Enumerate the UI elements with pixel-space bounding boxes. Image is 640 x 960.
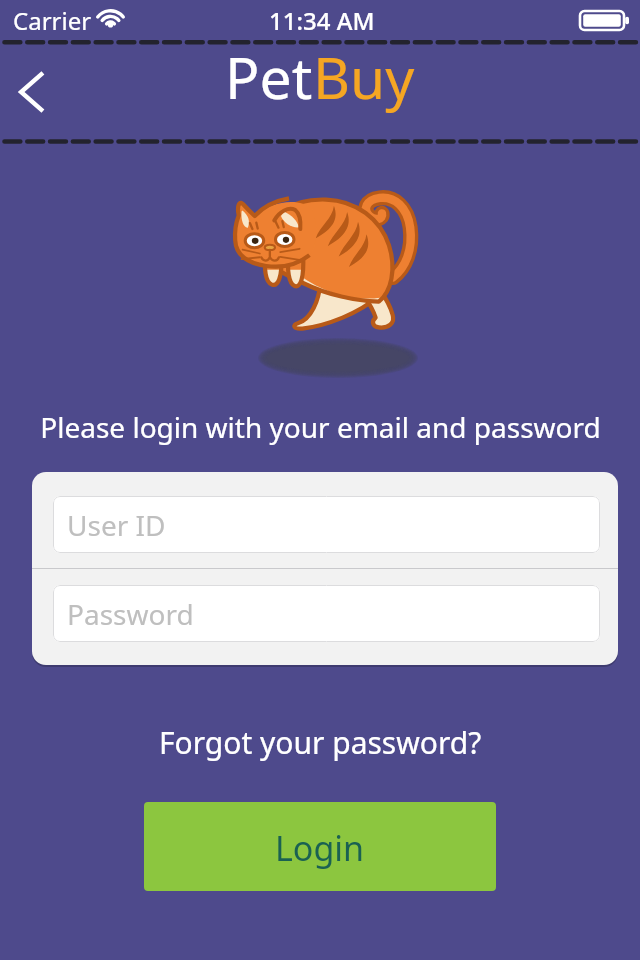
staticText: Please login with your email and passwor… — [40, 408, 601, 446]
staticText: Carrier — [13, 4, 92, 37]
staticText: Forgot your password? — [159, 722, 482, 763]
button[interactable]: User ID — [53, 496, 600, 553]
staticText: User ID — [67, 506, 166, 544]
staticText: Buy — [313, 38, 415, 116]
button[interactable]: Forgot your password? — [149, 716, 492, 769]
button[interactable]: Back — [2, 55, 60, 127]
staticText: Login — [275, 825, 365, 871]
staticText: Pet — [225, 38, 313, 116]
button[interactable]: Login — [144, 802, 496, 891]
staticText: 11:34 AM — [269, 4, 375, 37]
button[interactable]: Password — [53, 585, 600, 642]
staticText: Password — [67, 595, 194, 633]
